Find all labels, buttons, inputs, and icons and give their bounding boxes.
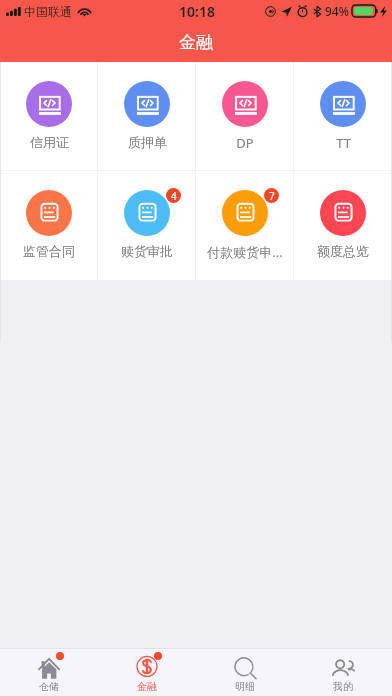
staticText: 明细 xyxy=(235,680,255,693)
button[interactable]: 信用证 xyxy=(0,62,98,170)
button[interactable]: 质押单 xyxy=(98,62,196,170)
staticText: 7 xyxy=(269,189,275,203)
staticText: 金融 xyxy=(137,680,157,693)
button[interactable]: DP xyxy=(196,62,294,170)
staticText: 金融 xyxy=(179,32,213,53)
button[interactable]: 额度总览 xyxy=(294,171,392,280)
button[interactable]: Details xyxy=(196,649,294,696)
button[interactable]: Finance xyxy=(98,649,196,696)
button[interactable]: 监管合同 xyxy=(0,171,98,280)
staticText: TT xyxy=(336,134,351,152)
staticText: 监管合同 xyxy=(23,243,75,259)
button[interactable]: 4 xyxy=(98,171,196,280)
button[interactable]: TT xyxy=(294,62,392,170)
staticText: 质押单 xyxy=(128,134,167,150)
button[interactable]: Mine xyxy=(294,649,392,696)
staticText: DP xyxy=(236,134,254,152)
staticText: 94% xyxy=(325,3,349,19)
staticText: 额度总览 xyxy=(317,243,369,259)
staticText: 10:18 xyxy=(179,2,215,21)
staticText: 我的 xyxy=(333,680,353,693)
staticText: 4 xyxy=(171,189,177,203)
staticText: 中国联通 xyxy=(24,4,72,19)
staticText: 仓储 xyxy=(39,680,59,693)
staticText: 赎货审批 xyxy=(121,243,173,259)
button[interactable]: 7 xyxy=(196,171,294,280)
staticText: 信用证 xyxy=(30,134,69,150)
staticText: 付款赎货申... xyxy=(207,243,283,261)
button[interactable]: Storage xyxy=(0,649,98,696)
